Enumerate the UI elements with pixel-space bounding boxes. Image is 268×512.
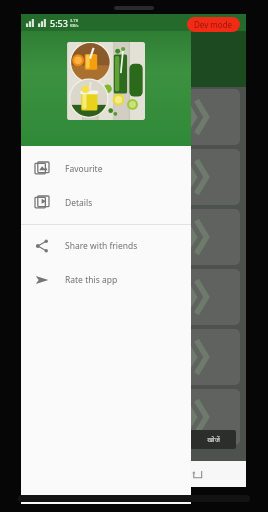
staticText: 5:53 (50, 17, 68, 29)
button[interactable]: Details (21, 186, 191, 220)
staticText: 3.78 (70, 18, 78, 23)
button[interactable]: Favourite (21, 152, 191, 186)
staticText: Favourite (65, 163, 103, 175)
button[interactable]: Rate this app (21, 263, 191, 297)
staticText: Share with friends (65, 240, 138, 252)
staticText: Dev mode (194, 19, 233, 30)
staticText: KB/s (70, 23, 79, 28)
button[interactable]: Dev mode (187, 17, 240, 32)
button[interactable]: खोजें (190, 430, 236, 449)
button[interactable] (67, 42, 145, 120)
staticText: Rate this app (65, 274, 118, 286)
button[interactable]: Share with friends (21, 229, 191, 263)
button[interactable]: Back (182, 461, 212, 487)
staticText: खोजें (207, 435, 220, 445)
staticText: Details (65, 197, 93, 209)
